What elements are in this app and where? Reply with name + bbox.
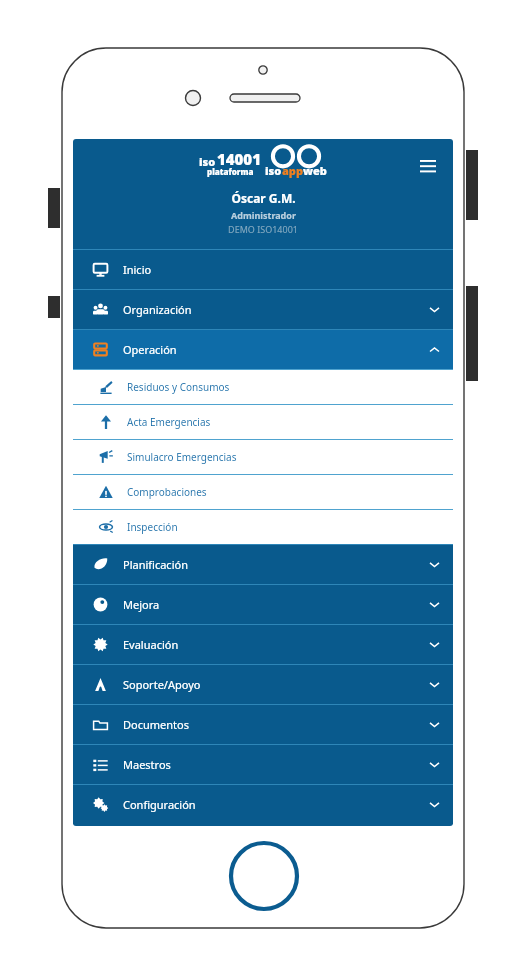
button[interactable]: Inicio: [73, 250, 453, 289]
staticText: Simulacro Emergencias: [127, 450, 237, 464]
staticText: Documentos: [123, 717, 189, 732]
staticText: Acta Emergencias: [127, 415, 211, 429]
staticText: Evaluación: [123, 637, 179, 652]
staticText: Operación: [123, 342, 177, 357]
button[interactable]: Residuos y Consumos: [73, 370, 453, 404]
staticText: app: [282, 163, 303, 178]
staticText: Residuos y Consumos: [127, 380, 230, 394]
staticText: DEMO ISO14001: [228, 223, 298, 235]
button[interactable]: Inspección: [73, 510, 453, 544]
button[interactable]: Maestros: [73, 745, 453, 784]
button[interactable]: Documentos: [73, 705, 453, 744]
staticText: Inspección: [127, 520, 178, 534]
button[interactable]: Simulacro Emergencias: [73, 440, 453, 474]
button[interactable]: Acta Emergencias: [73, 405, 453, 439]
staticText: iso: [199, 154, 216, 169]
button[interactable]: Planificación: [73, 545, 453, 584]
staticText: iso: [265, 163, 282, 178]
staticText: Administrador: [231, 209, 296, 221]
staticText: Inicio: [123, 262, 152, 277]
staticText: Configuración: [123, 797, 196, 812]
staticText: Comprobaciones: [127, 485, 207, 499]
staticText: 14001: [217, 149, 261, 169]
button[interactable]: Comprobaciones: [73, 475, 453, 509]
staticText: Maestros: [123, 757, 171, 772]
staticText: Planificación: [123, 557, 188, 572]
button[interactable]: Mejora: [73, 585, 453, 624]
button[interactable]: Configuración: [73, 785, 453, 824]
button[interactable]: Operación: [73, 330, 453, 369]
staticText: web: [303, 163, 327, 178]
button[interactable]: Soporte/Apoyo: [73, 665, 453, 704]
button[interactable]: Evaluación: [73, 625, 453, 664]
button[interactable]: Menu: [415, 153, 441, 179]
button[interactable]: Organización: [73, 290, 453, 329]
staticText: plataforma: [207, 166, 254, 177]
staticText: Mejora: [123, 597, 160, 612]
staticText: Soporte/Apoyo: [123, 677, 201, 692]
staticText: Organización: [123, 302, 192, 317]
staticText: Óscar G.M.: [231, 190, 296, 206]
